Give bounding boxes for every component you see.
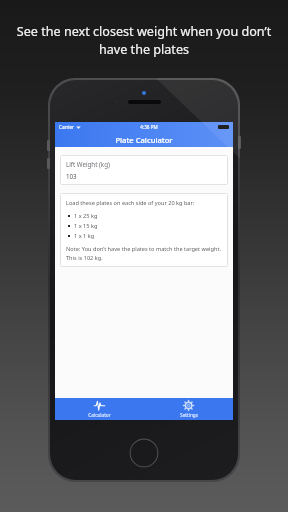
- staticText: Load these plates on each side of your 2…: [66, 199, 195, 207]
- staticText: 1 x 25 kg: [74, 212, 98, 220]
- staticText: Lift Weight (kg): [66, 160, 110, 168]
- staticText: Calculator: [88, 412, 111, 418]
- staticText: Carrier: [59, 124, 74, 130]
- staticText: Settings: [180, 412, 198, 418]
- staticText: 103: [66, 172, 77, 180]
- staticText: 4:36 PM: [140, 124, 158, 130]
- staticText: 1 x 1 kg: [74, 232, 95, 240]
- button[interactable]: Load these plates on each side of your 2…: [60, 193, 228, 267]
- button[interactable]: Settings: [144, 398, 233, 420]
- button[interactable]: Calculator: [55, 398, 144, 420]
- staticText: Plate Calculator: [115, 135, 173, 145]
- staticText: See the next closest weight when you don…: [9, 23, 279, 57]
- button[interactable]: Lift Weight (kg): [60, 155, 228, 185]
- staticText: 1 x 15 kg: [74, 222, 98, 230]
- staticText: Note: You don’t have the plates to match…: [66, 245, 222, 261]
